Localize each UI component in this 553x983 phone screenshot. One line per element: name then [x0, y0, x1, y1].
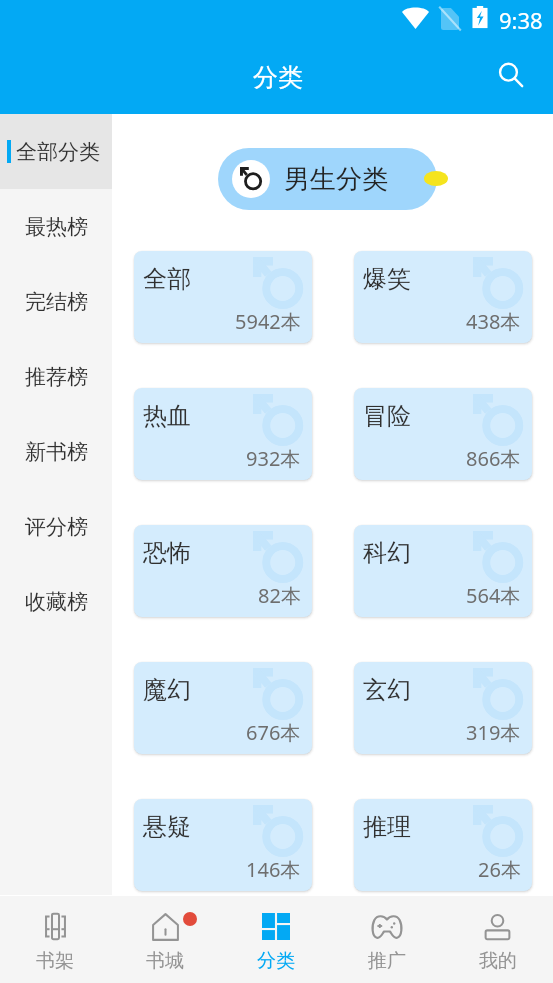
button[interactable]: 书城 [110, 896, 220, 983]
staticText: 全部 [143, 264, 191, 294]
staticText: 319本 [466, 719, 521, 746]
button[interactable]: 推理 [354, 799, 532, 891]
staticText: 146本 [246, 856, 301, 883]
button[interactable]: 全部 [134, 251, 312, 343]
staticText: 866本 [466, 445, 521, 472]
button[interactable]: 爆笑 [354, 251, 532, 343]
staticText: 书城 [146, 949, 184, 973]
staticText: 科幻 [363, 538, 411, 568]
button[interactable]: 全部分类 [0, 114, 112, 189]
button[interactable]: 评分榜 [0, 489, 112, 564]
button[interactable]: 魔幻 [134, 662, 312, 754]
button[interactable]: 推荐榜 [0, 339, 112, 414]
staticText: 全部分类 [16, 139, 100, 165]
staticText: 分类 [257, 949, 295, 973]
button[interactable]: 新书榜 [0, 414, 112, 489]
staticText: 评分榜 [25, 514, 88, 540]
staticText: 26本 [478, 856, 521, 883]
button[interactable]: 书架 [0, 896, 110, 983]
staticText: 564本 [466, 582, 521, 609]
staticText: 438本 [466, 308, 521, 335]
staticText: 分类 [253, 62, 303, 93]
button[interactable]: 玄幻 [354, 662, 532, 754]
staticText: 悬疑 [143, 812, 191, 842]
staticText: 9:38 [499, 5, 543, 35]
staticText: 完结榜 [25, 289, 88, 315]
staticText: 676本 [246, 719, 301, 746]
button[interactable]: Search [489, 53, 533, 97]
button[interactable]: 收藏榜 [0, 564, 112, 639]
staticText: 推理 [363, 812, 411, 842]
staticText: 932本 [246, 445, 301, 472]
staticText: 冒险 [363, 401, 411, 431]
staticText: 玄幻 [363, 675, 411, 705]
staticText: 爆笑 [363, 264, 411, 294]
staticText: 新书榜 [25, 439, 88, 465]
button[interactable]: 悬疑 [134, 799, 312, 891]
staticText: 收藏榜 [25, 589, 88, 615]
staticText: 82本 [258, 582, 301, 609]
button[interactable]: 科幻 [354, 525, 532, 617]
button[interactable]: 恐怖 [134, 525, 312, 617]
button[interactable]: 分类 [220, 896, 331, 983]
staticText: 推广 [368, 949, 406, 973]
button[interactable]: 我的 [442, 896, 553, 983]
button[interactable]: 热血 [134, 388, 312, 480]
button[interactable]: 完结榜 [0, 264, 112, 339]
staticText: 最热榜 [25, 214, 88, 240]
button[interactable]: 冒险 [354, 388, 532, 480]
button[interactable]: 最热榜 [0, 189, 112, 264]
button[interactable]: 男生分类 [218, 148, 437, 210]
staticText: 恐怖 [143, 538, 191, 568]
staticText: 男生分类 [284, 163, 388, 196]
staticText: 我的 [479, 949, 517, 973]
staticText: 书架 [36, 949, 74, 973]
staticText: 魔幻 [143, 675, 191, 705]
button[interactable]: 推广 [331, 896, 442, 983]
staticText: 推荐榜 [25, 364, 88, 390]
staticText: 热血 [143, 401, 191, 431]
staticText: 5942本 [235, 308, 301, 335]
